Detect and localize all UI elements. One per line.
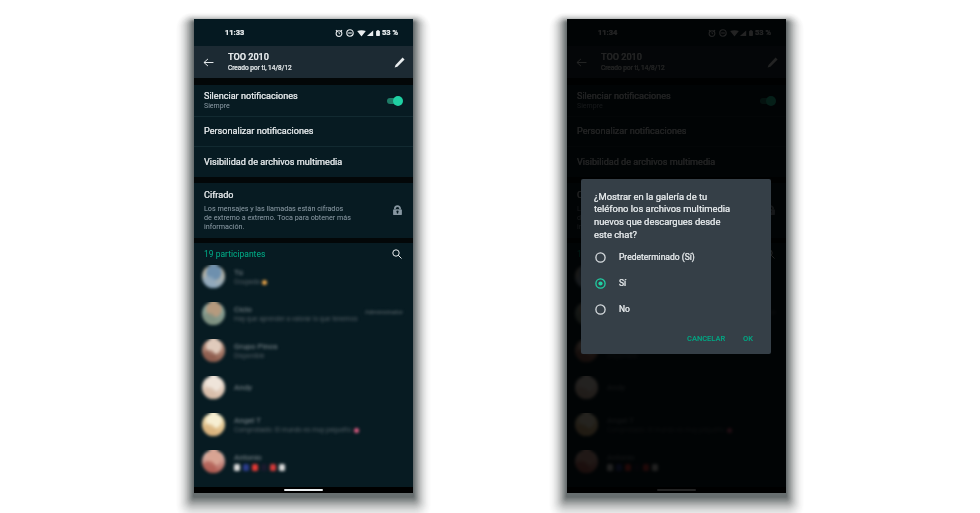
staticText: Hay que aprender a valorar lo que tenemo… — [234, 315, 358, 323]
staticText: Los mensajes y las llamadas están cifrad… — [577, 204, 724, 231]
button[interactable]: Back — [194, 46, 223, 78]
button[interactable]: Antonio — [567, 450, 786, 487]
button[interactable]: Personalizar notificaciones — [567, 117, 786, 146]
staticText: Siempre — [204, 102, 230, 110]
button[interactable]: Tú — [194, 265, 413, 302]
button[interactable]: Grupo Pinos — [567, 339, 786, 376]
button[interactable]: Silenciar notificaciones — [194, 85, 413, 116]
button[interactable]: Grupo Pinos — [194, 339, 413, 376]
staticText: Grupo Pinos — [234, 342, 278, 351]
button[interactable]: Predeterminado (Sí) — [581, 244, 771, 270]
button[interactable]: Andy — [567, 376, 786, 413]
button[interactable]: Andy — [194, 376, 413, 413]
button[interactable]: Ciclo — [194, 302, 413, 339]
staticText: Cifrado — [577, 190, 607, 201]
staticText: Disponible — [607, 352, 638, 360]
button[interactable]: Angel T — [194, 413, 413, 450]
staticText: 19 participantes — [577, 249, 639, 259]
staticText: Personalizar notificaciones — [204, 126, 314, 137]
staticText: Angel T — [234, 416, 261, 425]
button[interactable]: Ciclo — [567, 302, 786, 339]
staticText: 11:34 — [598, 28, 618, 37]
staticText: Sí — [619, 278, 627, 288]
staticText: Ciclo — [607, 305, 625, 314]
staticText: Ocupada — [607, 278, 633, 286]
staticText: Silenciar notificaciones — [577, 91, 671, 102]
button[interactable]: Visibilidad de archivos multimedia — [194, 147, 413, 177]
button[interactable]: Silenciar notificaciones — [567, 85, 786, 116]
staticText: Visibilidad de archivos multimedia — [577, 157, 716, 168]
staticText: Antonio — [234, 453, 262, 462]
button[interactable]: Personalizar notificaciones — [194, 117, 413, 146]
staticText: ¿Mostrar en la galería de tu teléfono lo… — [594, 191, 731, 240]
button[interactable]: Edit — [385, 46, 413, 78]
button[interactable]: Cifrado — [194, 183, 413, 238]
staticText: TOO 2010 — [601, 52, 642, 63]
button[interactable]: Sí — [581, 270, 771, 296]
staticText: Administrador — [738, 308, 776, 315]
staticText: CANCELAR — [687, 334, 726, 343]
button[interactable]: Search — [389, 246, 405, 262]
staticText: Disponible — [234, 352, 265, 360]
staticText: Silenciar notificaciones — [204, 91, 298, 102]
staticText: Creado por ti, 14/8/12 — [228, 64, 292, 72]
staticText: Ciclo — [234, 305, 252, 314]
staticText: Los mensajes y las llamadas están cifrad… — [204, 204, 351, 231]
button[interactable]: No — [581, 296, 771, 322]
button[interactable]: Tú — [567, 265, 786, 302]
staticText: 19 participantes — [204, 249, 266, 259]
staticText: Predeterminado (Sí) — [619, 252, 695, 262]
button[interactable]: CANCELAR — [683, 332, 730, 345]
staticText: No — [619, 304, 630, 314]
staticText: Personalizar notificaciones — [577, 126, 687, 137]
button[interactable]: Antonio — [194, 450, 413, 487]
staticText: Tú — [234, 268, 243, 277]
staticText: Creado por ti, 14/8/12 — [601, 64, 665, 72]
staticText: 53 % — [755, 28, 772, 37]
staticText: 11:33 — [225, 28, 245, 37]
staticText: OK — [743, 334, 753, 343]
staticText: Visibilidad de archivos multimedia — [204, 157, 343, 168]
button[interactable]: Edit — [758, 46, 786, 78]
staticText: Andy — [234, 383, 252, 392]
button[interactable]: Back — [567, 46, 596, 78]
staticText: Siempre — [577, 102, 603, 110]
button[interactable]: Search — [762, 246, 778, 262]
staticText: Ocupada — [234, 278, 260, 286]
staticText: Comprobado: El mundo es muy pequeño — [234, 426, 352, 434]
button[interactable]: Visibilidad de archivos multimedia — [567, 147, 786, 177]
staticText: TOO 2010 — [228, 52, 269, 63]
button[interactable]: Cifrado — [567, 183, 786, 238]
staticText: Administrador — [365, 308, 403, 315]
staticText: 53 % — [382, 28, 399, 37]
button[interactable]: OK — [739, 332, 757, 345]
button[interactable]: Angel T — [567, 413, 786, 450]
staticText: Cifrado — [204, 190, 234, 201]
